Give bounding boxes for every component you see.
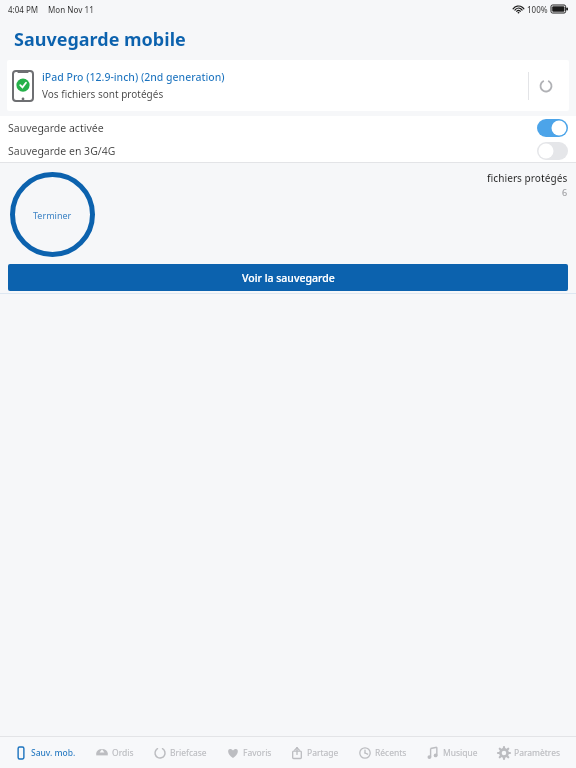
- button[interactable]: Sauvegarde activée: [0, 116, 576, 139]
- button[interactable]: Voir la sauvegarde: [8, 264, 568, 291]
- staticText: Vos fichiers sont protégés: [42, 87, 164, 101]
- staticText: Favoris: [243, 747, 272, 759]
- button[interactable]: Paramètres: [493, 743, 566, 763]
- button[interactable]: Partage: [286, 743, 344, 763]
- button[interactable]: Actualiser: [529, 66, 563, 106]
- button[interactable]: Sauvegarde en 3G/4G: [0, 139, 576, 162]
- button[interactable]: iPad Pro (12.9-inch) (2nd generation): [7, 60, 569, 111]
- staticText: Voir la sauvegarde: [242, 271, 335, 285]
- staticText: 4:04 PM: [8, 4, 39, 15]
- staticText: Briefcase: [170, 747, 207, 759]
- button[interactable]: Terminer: [10, 172, 95, 257]
- staticText: 6: [562, 186, 568, 198]
- staticText: Sauvegarde activée: [8, 121, 104, 135]
- staticText: Mon Nov 11: [48, 4, 94, 15]
- button[interactable]: Ordis: [91, 743, 139, 763]
- staticText: Partage: [307, 747, 339, 759]
- staticText: iPad Pro (12.9-inch) (2nd generation): [42, 70, 225, 84]
- button[interactable]: Briefcase: [149, 743, 212, 763]
- button[interactable]: Favoris: [222, 743, 277, 763]
- staticText: Sauv. mob.: [31, 747, 76, 759]
- staticText: Sauvegarde en 3G/4G: [8, 144, 116, 158]
- staticText: fichiers protégés: [487, 171, 568, 185]
- button[interactable]: Sauv. mob.: [10, 743, 81, 763]
- button[interactable]: Musique: [422, 743, 483, 763]
- staticText: Ordis: [112, 747, 134, 759]
- staticText: Paramètres: [514, 747, 561, 759]
- staticText: Récents: [375, 747, 407, 759]
- staticText: Musique: [443, 747, 478, 759]
- staticText: 100%: [527, 4, 548, 15]
- button[interactable]: Récents: [354, 743, 412, 763]
- staticText: Terminer: [33, 209, 72, 221]
- staticText: Sauvegarde mobile: [14, 27, 186, 52]
